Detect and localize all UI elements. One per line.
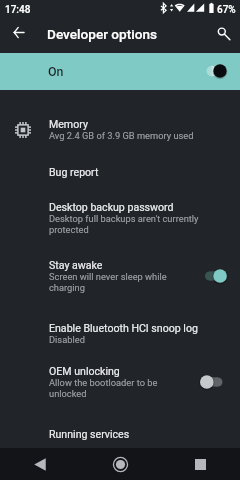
button[interactable]: On <box>0 53 240 90</box>
button[interactable]: Recent apps <box>160 448 240 480</box>
staticText: OEM unlocking <box>49 365 120 377</box>
button[interactable]: Enable Bluetooth HCI snoop log <box>0 314 240 357</box>
button[interactable]: Stay awake <box>0 251 240 314</box>
button[interactable]: Off <box>200 372 234 392</box>
button[interactable]: Search <box>210 23 236 49</box>
staticText: Disabled <box>49 334 85 345</box>
button[interactable]: Navigate up <box>6 24 32 50</box>
staticText: Developer options <box>47 26 158 42</box>
button[interactable]: Running services <box>0 420 240 448</box>
staticText: Enable Bluetooth HCI snoop log <box>49 322 198 334</box>
staticText: Allow the bootloader to be unlocked <box>49 377 196 399</box>
button[interactable]: Desktop backup password <box>0 192 240 251</box>
staticText: Memory <box>49 118 88 130</box>
staticText: On <box>48 64 64 79</box>
staticText: Bug report <box>49 166 99 178</box>
button[interactable]: Back <box>0 448 80 480</box>
button[interactable]: OEM unlocking <box>0 357 240 420</box>
staticText: 17:48 <box>5 4 31 16</box>
button[interactable]: Home <box>80 448 160 480</box>
button[interactable]: Bug report <box>0 156 240 192</box>
staticText: Running services <box>49 428 130 440</box>
button[interactable]: Memory <box>0 110 240 156</box>
staticText: Screen will never sleep while charging <box>49 271 196 293</box>
staticText: Desktop backup password <box>49 201 174 213</box>
staticText: Avg 2.4 GB of 3.9 GB memory used <box>49 130 194 141</box>
staticText: 67% <box>217 4 236 16</box>
staticText: Desktop full backups aren't currently pr… <box>49 213 234 235</box>
button[interactable]: On <box>200 266 234 286</box>
staticText: Stay awake <box>49 259 103 271</box>
